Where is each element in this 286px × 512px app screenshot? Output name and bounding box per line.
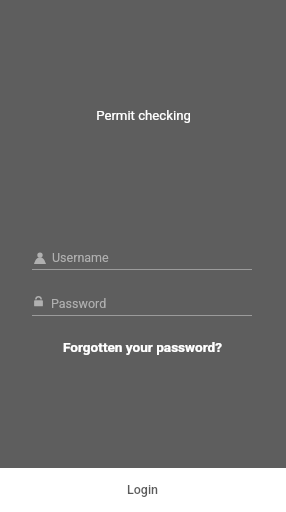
staticText: Permit checking bbox=[96, 108, 191, 123]
button[interactable]: Username bbox=[32, 250, 252, 265]
staticText: Login bbox=[127, 482, 159, 497]
button[interactable]: Forgotten your password? bbox=[53, 333, 233, 361]
staticText: Forgotten your password? bbox=[63, 339, 223, 355]
button[interactable]: Password bbox=[32, 296, 252, 311]
button[interactable]: Login bbox=[0, 468, 286, 512]
staticText: Password bbox=[51, 296, 107, 311]
staticText: Username bbox=[52, 250, 109, 265]
